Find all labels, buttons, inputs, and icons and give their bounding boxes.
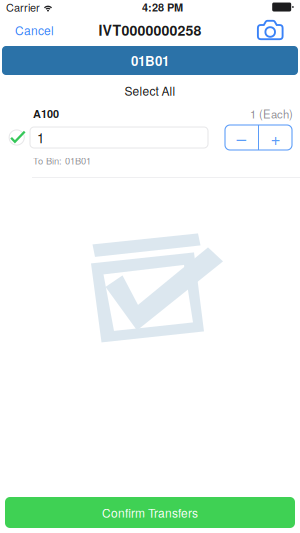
staticText: Select All xyxy=(124,82,175,99)
button[interactable]: Scan barcode xyxy=(246,19,300,41)
button[interactable]: Select All xyxy=(0,75,300,106)
button[interactable]: Confirm Transfers xyxy=(5,497,295,528)
staticText: Confirm Transfers xyxy=(102,504,198,521)
button[interactable]: Cancel xyxy=(0,15,64,45)
button[interactable]: Decrease quantity xyxy=(225,125,258,150)
staticText: 01B01 xyxy=(131,51,169,70)
staticText: IVT0000000258 xyxy=(98,20,201,40)
staticText: 1 xyxy=(37,128,44,147)
button[interactable]: Toggle item selected xyxy=(4,125,30,150)
staticText: – xyxy=(236,125,246,150)
button[interactable]: Increase quantity xyxy=(259,125,292,150)
staticText: Carrier xyxy=(6,0,40,15)
staticText: 4:28 PM xyxy=(142,0,183,15)
staticText: 1 (Each) xyxy=(250,105,293,122)
staticText: Cancel xyxy=(15,21,54,39)
staticText: To Bin: 01B01 xyxy=(33,154,91,167)
staticText: A100 xyxy=(33,106,59,121)
staticText: + xyxy=(270,125,280,150)
